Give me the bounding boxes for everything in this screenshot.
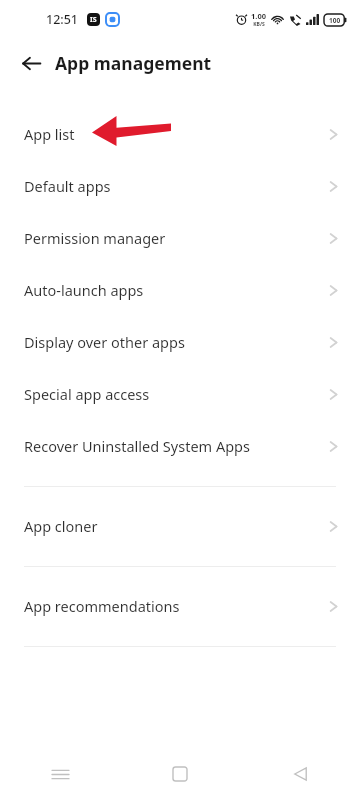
staticText: App recommendations <box>24 596 180 616</box>
button[interactable]: App cloner <box>0 500 360 552</box>
staticText: Default apps <box>24 176 111 196</box>
staticText: KB/S <box>253 21 265 28</box>
button[interactable]: Back <box>11 43 51 83</box>
button[interactable]: Default apps <box>0 160 360 212</box>
button[interactable]: Recover Uninstalled System Apps <box>0 420 360 472</box>
staticText: Permission manager <box>24 228 166 248</box>
staticText: App cloner <box>24 516 98 536</box>
staticText: Recover Uninstalled System Apps <box>24 436 250 456</box>
staticText: 12:51 <box>46 11 79 28</box>
staticText: Display over other apps <box>24 332 185 352</box>
button[interactable]: Auto-launch apps <box>0 264 360 316</box>
staticText: 100 <box>329 16 341 25</box>
button[interactable]: Back <box>240 748 360 800</box>
button[interactable]: Home <box>120 748 240 800</box>
button[interactable]: Permission manager <box>0 212 360 264</box>
staticText: App management <box>55 51 212 75</box>
button[interactable]: App recommendations <box>0 580 360 632</box>
staticText: IS <box>90 15 97 25</box>
staticText: App list <box>24 124 75 144</box>
button[interactable]: Special app access <box>0 368 360 420</box>
staticText: Special app access <box>24 384 150 404</box>
staticText: 1.00 <box>251 11 266 21</box>
button[interactable]: App list <box>0 108 360 160</box>
button[interactable]: Display over other apps <box>0 316 360 368</box>
button[interactable]: Recent apps <box>0 748 120 800</box>
staticText: Auto-launch apps <box>24 280 144 300</box>
